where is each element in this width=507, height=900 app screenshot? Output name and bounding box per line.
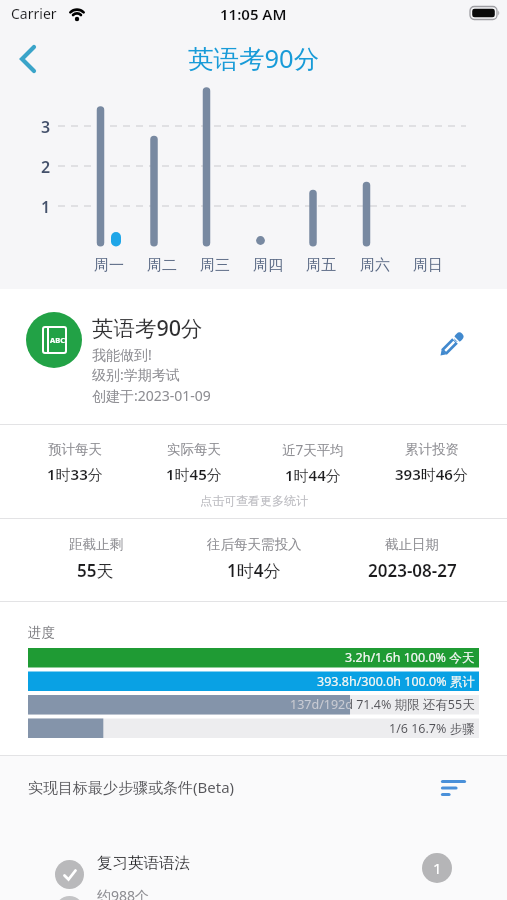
staticText: 393时46分 [395, 464, 468, 484]
staticText: 级别:学期考试 [92, 365, 180, 384]
staticText: 距截止剩 [69, 536, 123, 553]
button[interactable] [433, 770, 473, 806]
staticText: 周六 [360, 256, 390, 275]
staticText: 1时4分 [227, 559, 281, 582]
staticText: 复习英语语法 [97, 853, 190, 873]
staticText: 周一 [94, 256, 124, 275]
staticText: 3 [41, 116, 51, 138]
staticText: 1时33分 [47, 464, 103, 484]
staticText: 预计每天 [48, 441, 102, 458]
staticText: 周二 [147, 256, 177, 275]
staticText: 2 [41, 156, 51, 178]
staticText: 英语考90分 [188, 41, 320, 76]
staticText: 点击可查看更多统计 [200, 493, 308, 508]
staticText: Carrier [11, 4, 57, 23]
staticText: 创建于:2023-01-09 [92, 386, 211, 405]
button[interactable]: 复习英语语法 [0, 830, 507, 900]
staticText: 英语考90分 [92, 313, 203, 342]
button[interactable] [8, 40, 48, 78]
staticText: 近7天平均 [282, 441, 344, 459]
staticText: 实际每天 [167, 441, 221, 458]
staticText: 我能做到! [92, 345, 152, 364]
staticText: 1时45分 [166, 464, 222, 484]
staticText: 11:05 AM [220, 4, 287, 24]
staticText: 进度 [28, 624, 55, 641]
staticText: 周三 [200, 256, 230, 275]
staticText: 1时44分 [285, 465, 341, 485]
staticText: 2023-08-27 [368, 559, 457, 582]
staticText: 周四 [253, 256, 283, 275]
staticText: 约988个 [97, 886, 150, 900]
staticText: 1 [41, 196, 51, 218]
button[interactable] [432, 324, 472, 364]
staticText: ABC [50, 335, 65, 345]
staticText: 累计投资 [405, 441, 459, 458]
staticText: 周五 [306, 256, 336, 275]
staticText: 实现目标最少步骤或条件(Beta) [28, 777, 235, 797]
staticText: 55天 [77, 559, 114, 582]
staticText: 往后每天需投入 [207, 536, 302, 553]
staticText: 1 [433, 858, 442, 878]
staticText: 周日 [413, 256, 443, 275]
staticText: 截止日期 [385, 536, 439, 553]
